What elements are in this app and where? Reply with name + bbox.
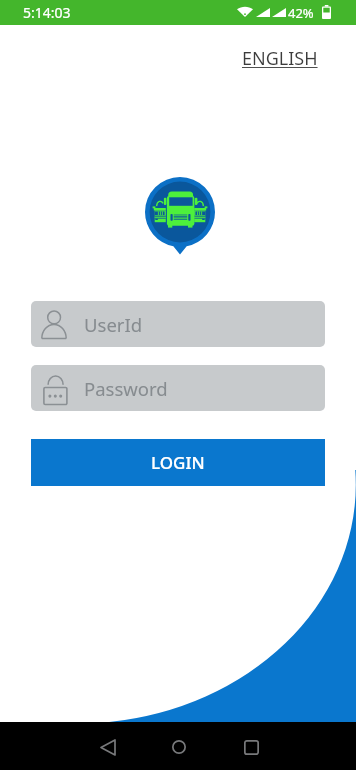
staticText: 42% xyxy=(288,4,314,22)
button[interactable]: Password xyxy=(31,365,325,411)
button[interactable]: ENGLISH xyxy=(242,46,318,71)
staticText: ENGLISH xyxy=(242,46,318,71)
button[interactable]: Back xyxy=(84,724,132,770)
staticText: Password xyxy=(84,376,168,401)
staticText: 5:14:03 xyxy=(23,3,71,22)
button[interactable]: Home xyxy=(155,724,203,770)
staticText: LOGIN xyxy=(151,451,205,474)
button[interactable]: LOGIN xyxy=(31,439,325,486)
staticText: UserId xyxy=(84,312,143,337)
button[interactable]: Recents xyxy=(227,724,275,770)
button[interactable]: UserId xyxy=(31,301,325,347)
